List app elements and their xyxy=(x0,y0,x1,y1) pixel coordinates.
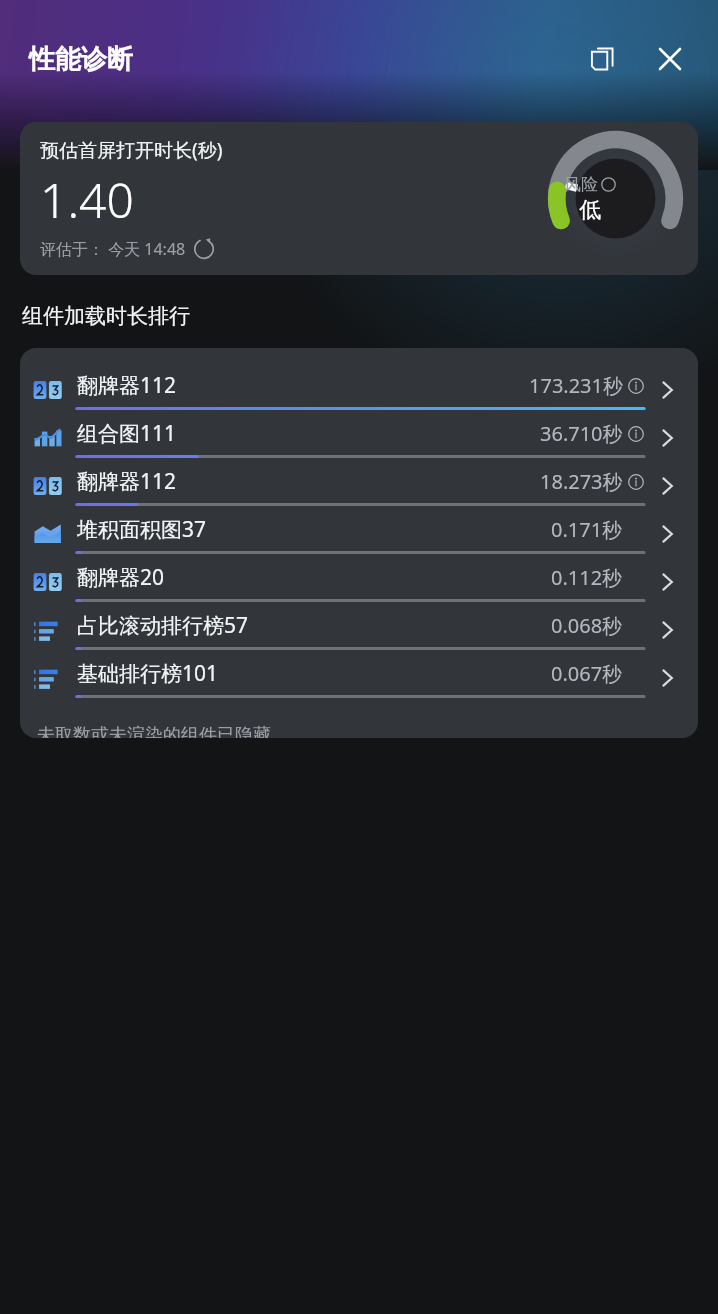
button[interactable]: Refresh xyxy=(193,238,215,260)
staticText: 占比滚动排行榜57 xyxy=(77,611,551,640)
staticText: 0.171秒 xyxy=(551,516,623,543)
button[interactable]: 翻牌器112 xyxy=(20,366,698,414)
staticText: 173.231秒 xyxy=(529,372,623,399)
staticText: 预估首屏打开时长(秒) xyxy=(40,137,223,163)
button[interactable]: 堆积面积图37 xyxy=(20,510,698,558)
staticText: 评估于： 今天 14:48 xyxy=(40,238,186,260)
staticText: 翻牌器112 xyxy=(77,467,540,496)
staticText: 翻牌器112 xyxy=(77,371,529,400)
button[interactable]: 翻牌器20 xyxy=(20,558,698,606)
button[interactable]: Close xyxy=(646,35,694,83)
button[interactable]: 翻牌器112 xyxy=(20,462,698,510)
staticText: 0.067秒 xyxy=(551,660,623,687)
staticText: 翻牌器20 xyxy=(77,563,551,592)
staticText: 风险 xyxy=(564,174,598,195)
staticText: 0.068秒 xyxy=(551,612,623,639)
staticText: 36.710秒 xyxy=(540,420,623,447)
staticText: 性能诊断 xyxy=(29,43,133,76)
button[interactable]: 组合图111 xyxy=(20,414,698,462)
staticText: 基础排行榜101 xyxy=(77,659,551,688)
button[interactable]: Copy report xyxy=(578,35,626,83)
button[interactable]: 预估首屏打开时长(秒) xyxy=(20,122,698,275)
staticText: 组件加载时长排行 xyxy=(22,303,190,329)
staticText: 堆积面积图37 xyxy=(77,515,551,544)
staticText: 组合图111 xyxy=(77,419,540,448)
staticText: 低 xyxy=(579,196,601,224)
staticText: 0.112秒 xyxy=(551,564,623,591)
staticText: 1.40 xyxy=(40,167,134,232)
button[interactable]: 基础排行榜101 xyxy=(20,654,698,702)
button[interactable]: 占比滚动排行榜57 xyxy=(20,606,698,654)
staticText: 18.273秒 xyxy=(540,468,623,495)
staticText: 未取数或未渲染的组件已隐藏 xyxy=(37,724,271,738)
